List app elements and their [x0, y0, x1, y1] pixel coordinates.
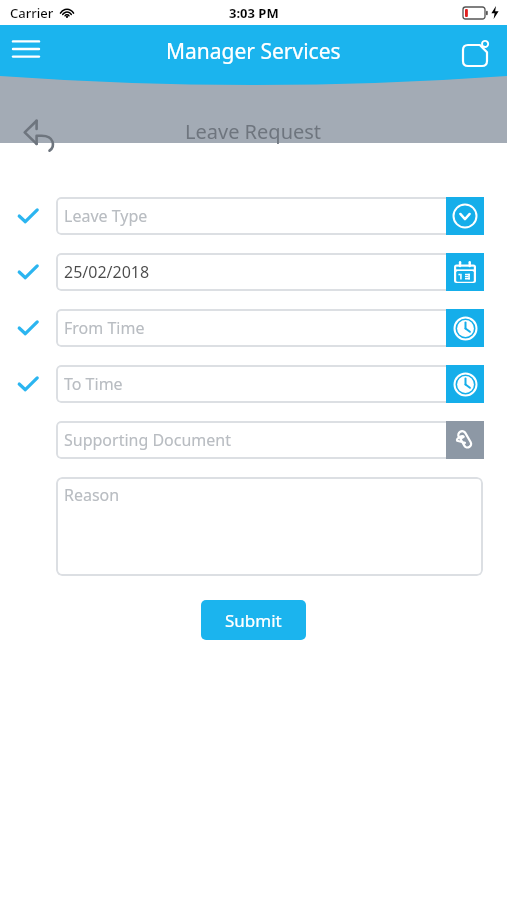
staticText: 3:03 PM — [229, 4, 279, 22]
button[interactable]: Notes — [451, 30, 499, 78]
staticText: To Time — [64, 373, 123, 395]
button[interactable]: Supporting Document — [56, 421, 483, 459]
button[interactable]: From Time — [56, 309, 483, 347]
button[interactable]: 25/02/2018 — [56, 253, 483, 291]
staticText: Leave Type — [64, 205, 148, 227]
button[interactable]: Attach document — [446, 421, 484, 459]
staticText: 25/02/2018 — [64, 261, 150, 283]
button[interactable]: Pick date — [446, 253, 484, 291]
staticText: From Time — [64, 317, 145, 339]
staticText: Supporting Document — [64, 429, 232, 451]
staticText: Carrier — [10, 4, 54, 22]
button[interactable]: Select — [446, 197, 484, 235]
button[interactable]: Back — [16, 109, 64, 157]
staticText: Submit — [225, 609, 282, 632]
button[interactable]: Reason — [56, 477, 483, 576]
button[interactable]: Pick time — [446, 365, 484, 403]
button[interactable]: To Time — [56, 365, 483, 403]
staticText: Leave Request — [185, 118, 322, 145]
button[interactable]: Submit — [201, 600, 306, 640]
button[interactable]: Pick time — [446, 309, 484, 347]
staticText: Manager Services — [166, 37, 341, 66]
staticText: Reason — [64, 484, 120, 506]
button[interactable]: Leave Type — [56, 197, 483, 235]
button[interactable]: Menu — [2, 25, 50, 73]
